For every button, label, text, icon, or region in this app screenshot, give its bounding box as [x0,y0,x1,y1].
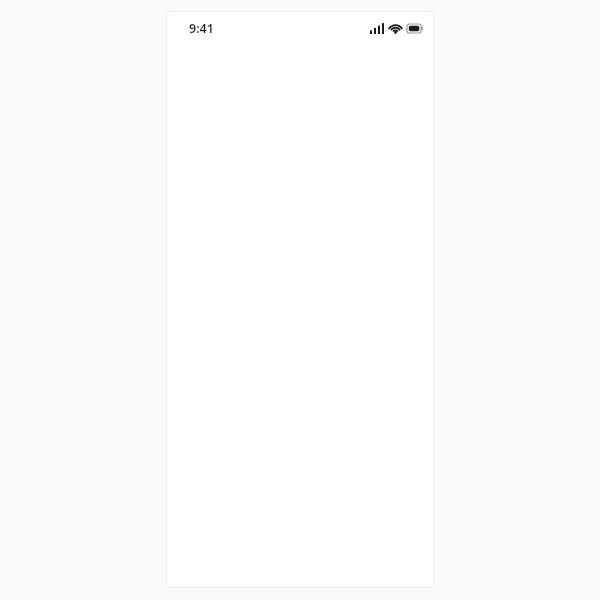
other: Cellular signal [370,23,384,34]
other: Wi-Fi [389,23,402,34]
staticText: 9:41 [189,20,214,37]
other: Battery [407,24,423,33]
